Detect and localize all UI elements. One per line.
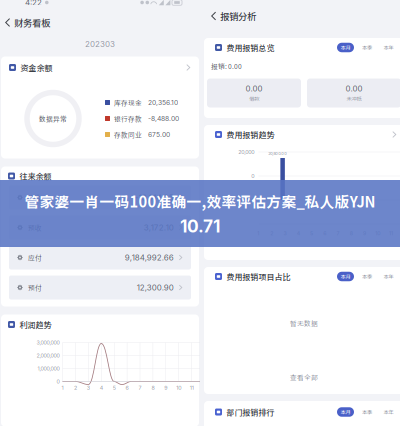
staticText: 4	[297, 230, 300, 236]
button[interactable]: 本季	[358, 43, 375, 52]
staticText: 202303	[85, 39, 115, 49]
staticText: 10	[176, 384, 181, 391]
staticText: 4:22	[25, 0, 42, 7]
staticText: 675.00	[148, 130, 170, 139]
staticText: 3,000,000	[36, 339, 59, 346]
button[interactable]: 本年	[380, 407, 397, 417]
staticText: 0.00	[245, 84, 262, 93]
staticText: 费用报销总览	[226, 42, 274, 53]
button[interactable]: 应付	[9, 245, 191, 269]
staticText: 往来余额	[19, 170, 51, 182]
button[interactable]: 应收	[9, 185, 191, 209]
staticText: 8	[151, 384, 154, 391]
staticText: 未冲抵	[346, 94, 361, 102]
staticText: 3	[87, 384, 90, 391]
staticText: 1,000,000	[37, 365, 59, 372]
staticText: 2,000,000	[36, 352, 59, 359]
staticText: 20,000	[238, 149, 254, 155]
staticText: 数据异常	[39, 114, 67, 123]
staticText: -8,488.00	[148, 114, 179, 123]
staticText: 本月	[340, 408, 350, 416]
button[interactable]: 本年	[380, 272, 397, 281]
button[interactable]: 本年	[380, 43, 397, 52]
staticText: 本月	[340, 44, 350, 51]
staticText: 20,800.00	[268, 151, 287, 156]
staticText: 2	[74, 384, 77, 391]
staticText: 部门报销排行	[226, 406, 274, 418]
staticText: 费用报销趋势	[226, 129, 274, 140]
button[interactable]: 财务看板	[0, 13, 50, 32]
staticText: 报销分析	[220, 9, 256, 23]
staticText: 本年	[383, 408, 393, 416]
button[interactable]: 本季	[358, 272, 375, 281]
staticText: -10,000	[237, 197, 254, 203]
staticText: 暂无数据	[290, 318, 318, 328]
staticText: 12,300.90	[137, 283, 174, 292]
staticText: 本季	[362, 44, 372, 51]
staticText: 10.71	[180, 216, 220, 237]
staticText: 本年	[383, 273, 393, 280]
staticText: 存款同业	[114, 130, 142, 139]
button[interactable]: 资金余额	[1, 56, 199, 78]
button[interactable]: 预收	[9, 215, 191, 239]
staticText: 应付	[28, 253, 42, 262]
button[interactable]: 本月	[337, 43, 354, 52]
staticText: 0	[251, 173, 254, 179]
staticText: 5	[113, 384, 116, 391]
staticText: 0.00	[345, 84, 362, 93]
staticText: 11	[190, 384, 194, 391]
staticText: 报销: 0.00	[211, 61, 242, 71]
staticText: 1	[61, 384, 63, 391]
staticText: 4	[100, 384, 103, 391]
staticText: 资金余额	[20, 62, 52, 73]
staticText: 20,356.10	[148, 98, 178, 107]
staticText: 费用报销项目占比	[226, 271, 290, 282]
button[interactable]: 查看全部	[204, 360, 400, 394]
staticText: 查看全部	[290, 372, 318, 382]
staticText: 利润趋势	[19, 319, 51, 330]
staticText: 3,172.10	[144, 223, 174, 232]
button[interactable]: 本季	[358, 407, 375, 417]
staticText: 9	[164, 384, 167, 391]
staticText: 本月	[340, 273, 350, 280]
staticText: 9,184,992.66	[125, 253, 174, 262]
staticText: 借款	[249, 94, 259, 102]
staticText: 管家婆一肖一码100准确一,效率评估方案_私人版YJN	[24, 190, 375, 212]
staticText: 库存现金	[114, 98, 142, 107]
staticText: 0	[56, 378, 59, 385]
staticText: 本季	[362, 273, 372, 280]
staticText: 本季	[362, 408, 372, 416]
staticText: 预收	[28, 223, 42, 232]
staticText: 财务看板	[14, 16, 50, 29]
staticText: 预付	[28, 283, 42, 292]
staticText: 6	[126, 384, 129, 391]
button[interactable]: 报销分析	[200, 6, 256, 26]
button[interactable]: 预付	[9, 275, 191, 299]
staticText: 12	[202, 384, 207, 391]
staticText: -13,144.25	[135, 193, 174, 202]
staticText: 7	[138, 384, 141, 391]
button[interactable]: 本月	[337, 407, 354, 417]
staticText: 银行存款	[114, 114, 142, 123]
staticText: 本年	[383, 44, 393, 51]
button[interactable]: 本月	[337, 272, 354, 281]
staticText: 应收	[28, 193, 42, 202]
